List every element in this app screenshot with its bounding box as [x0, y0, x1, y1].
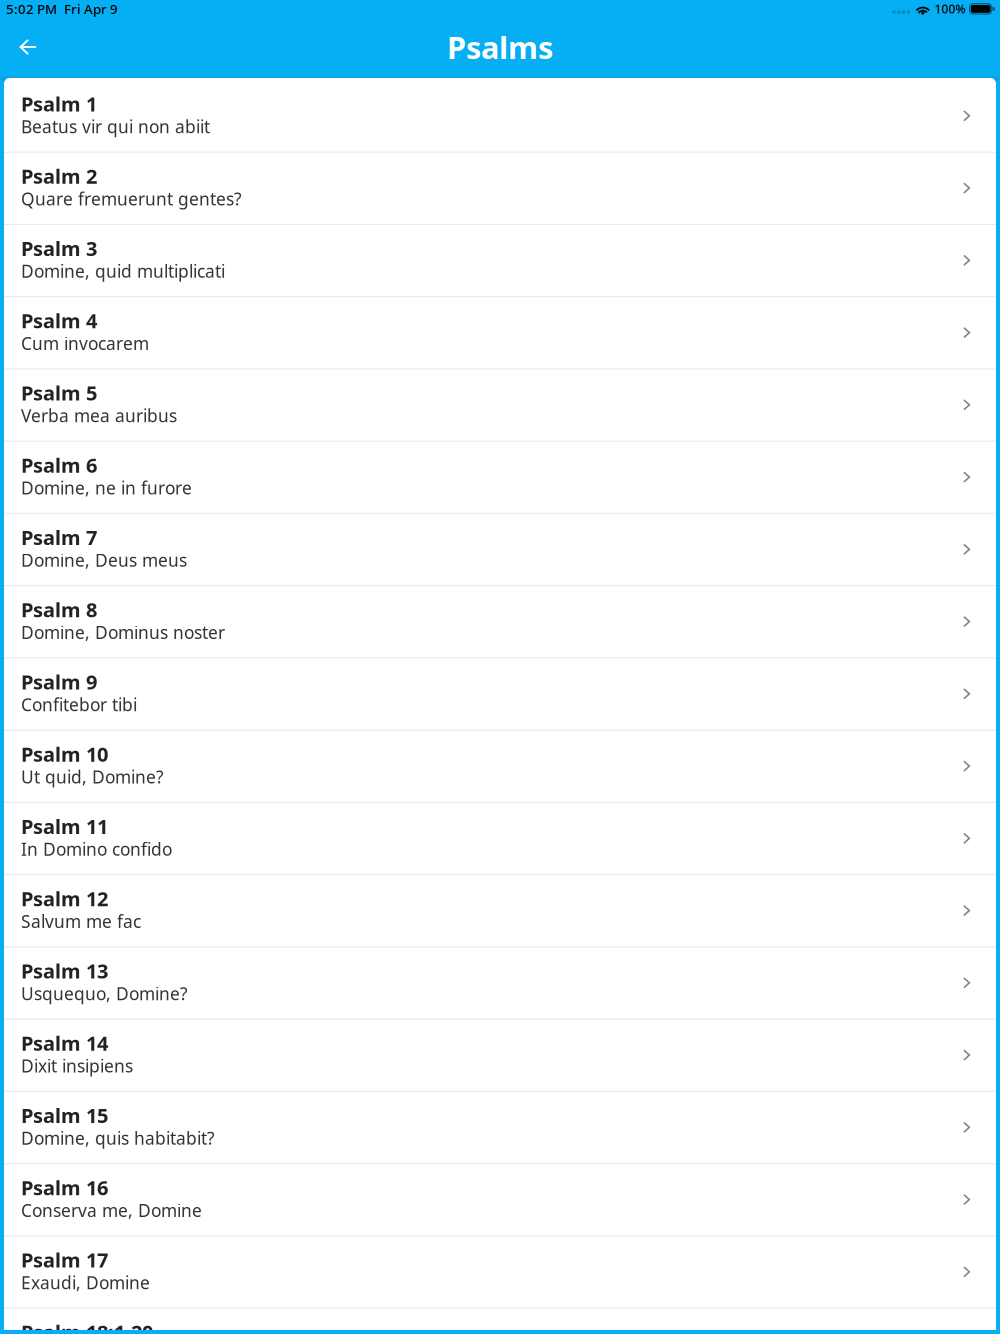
staticText: Psalm 17: [21, 1246, 108, 1273]
staticText: Psalm 4: [21, 307, 97, 334]
staticText: Psalm 8: [21, 596, 97, 623]
staticText: Psalm 1: [21, 90, 97, 117]
staticText: Confitebor tibi: [21, 693, 137, 716]
staticText: Conserva me, Domine: [21, 1199, 202, 1222]
button[interactable]: Psalm 6: [4, 442, 996, 513]
staticText: Psalm 13: [21, 957, 108, 984]
staticText: Psalms: [447, 27, 553, 67]
staticText: Quare fremuerunt gentes?: [21, 187, 242, 210]
staticText: Domine, quid multiplicati: [21, 259, 225, 282]
staticText: Psalm 14: [21, 1030, 108, 1056]
button[interactable]: Psalm 9: [4, 658, 996, 730]
staticText: Psalm 9: [21, 668, 97, 695]
button[interactable]: Psalm 3: [4, 225, 996, 296]
staticText: Psalm 18:1-20: [21, 1319, 153, 1334]
staticText: Psalm 16: [21, 1174, 108, 1201]
staticText: Fri Apr 9: [64, 0, 118, 18]
staticText: Domine, ne in furore: [21, 476, 192, 499]
button[interactable]: Psalm 1: [4, 80, 996, 152]
button[interactable]: Psalm 16: [4, 1164, 996, 1235]
button[interactable]: Psalm 18:1-20: [4, 1309, 996, 1334]
button[interactable]: Psalm 11: [4, 803, 996, 874]
staticText: Domine, Dominus noster: [21, 621, 225, 644]
button[interactable]: Psalm 15: [4, 1092, 996, 1163]
button[interactable]: Psalm 10: [4, 731, 996, 802]
staticText: Psalm 5: [21, 379, 97, 406]
button[interactable]: Psalm 8: [4, 586, 996, 657]
staticText: Domine, Deus meus: [21, 548, 187, 571]
button[interactable]: Psalm 4: [4, 297, 996, 368]
staticText: Verba mea auribus: [21, 404, 177, 427]
staticText: Usquequo, Domine?: [21, 982, 188, 1005]
staticText: In Domino confido: [21, 837, 172, 860]
staticText: Psalm 10: [21, 741, 108, 767]
staticText: 100%: [934, 1, 965, 17]
staticText: Dixit insipiens: [21, 1054, 133, 1077]
button[interactable]: Psalm 2: [4, 153, 996, 224]
button[interactable]: Psalm 5: [4, 369, 996, 441]
staticText: Psalm 7: [21, 524, 97, 550]
staticText: Psalm 3: [21, 235, 97, 261]
button[interactable]: Psalm 13: [4, 947, 996, 1019]
staticText: Beatus vir qui non abiit: [21, 115, 210, 138]
button[interactable]: Psalm 7: [4, 514, 996, 585]
button[interactable]: Psalm 12: [4, 875, 996, 946]
button[interactable]: Back: [0, 26, 56, 68]
staticText: Domine, quis habitabit?: [21, 1126, 215, 1149]
staticText: Ut quid, Domine?: [21, 765, 164, 788]
staticText: Salvum me fac: [21, 910, 141, 933]
staticText: Psalm 2: [21, 163, 97, 189]
staticText: Psalm 11: [21, 813, 108, 839]
staticText: Psalm 12: [21, 885, 108, 912]
staticText: Psalm 6: [21, 452, 97, 478]
staticText: Cum invocarem: [21, 332, 149, 355]
staticText: 5:02 PM: [6, 0, 57, 18]
button[interactable]: Psalm 17: [4, 1236, 996, 1308]
button[interactable]: Psalm 14: [4, 1020, 996, 1091]
staticText: Psalm 15: [21, 1102, 108, 1128]
staticText: Exaudi, Domine: [21, 1271, 150, 1294]
